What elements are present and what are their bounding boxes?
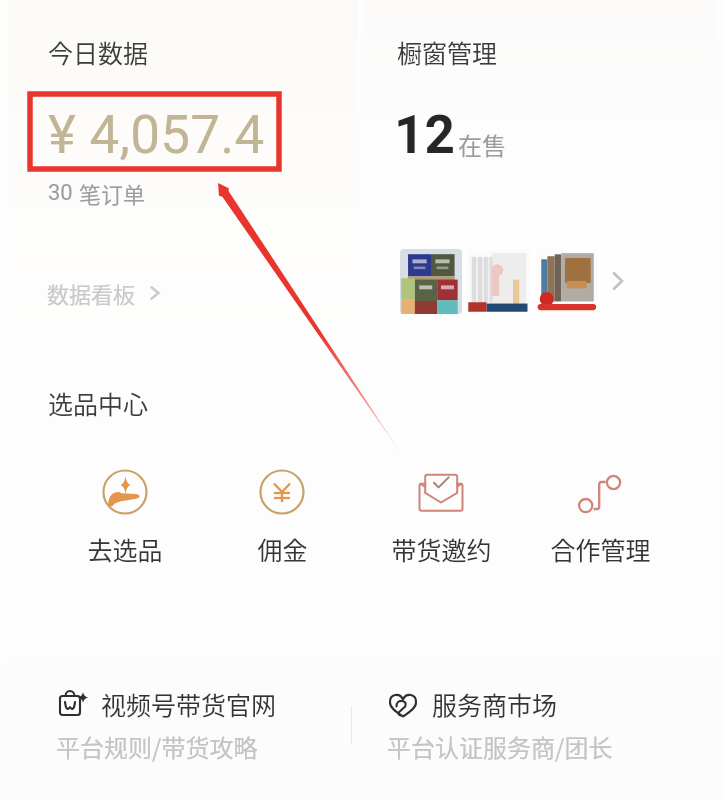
button[interactable]: 合作管理 (530, 469, 670, 567)
staticText: 在售 (458, 127, 506, 162)
button[interactable]: 去选品 (55, 469, 195, 567)
staticText: ¥ 4,057.4 (48, 104, 265, 166)
staticText: 今日数据 (48, 34, 149, 70)
staticText: 选品中心 (48, 385, 149, 421)
staticText: 平台规则/带货攻略 (56, 729, 258, 764)
button[interactable]: 服务商市场 (388, 686, 688, 764)
staticText: 橱窗管理 (397, 34, 498, 70)
staticText: 平台认证服务商/团长 (387, 729, 613, 764)
button[interactable]: 视频号带货官网 (57, 686, 347, 764)
button[interactable]: 数据看板 (47, 277, 163, 309)
button[interactable]: More products (603, 261, 633, 301)
staticText: 视频号带货官网 (101, 686, 277, 722)
staticText: 服务商市场 (432, 686, 558, 722)
button[interactable] (8, 0, 358, 344)
button[interactable]: 佣金 (212, 469, 352, 567)
staticText: 数据看板 (47, 277, 136, 309)
staticText: 30 (48, 180, 73, 206)
staticText: 佣金 (257, 531, 308, 567)
staticText: 合作管理 (550, 531, 651, 567)
button[interactable] (366, 0, 716, 344)
staticText: 笔订单 (79, 177, 146, 209)
staticText: 带货邀约 (391, 531, 492, 567)
staticText: 去选品 (87, 531, 163, 567)
staticText: 12 (394, 104, 455, 166)
button[interactable]: 带货邀约 (371, 469, 511, 567)
